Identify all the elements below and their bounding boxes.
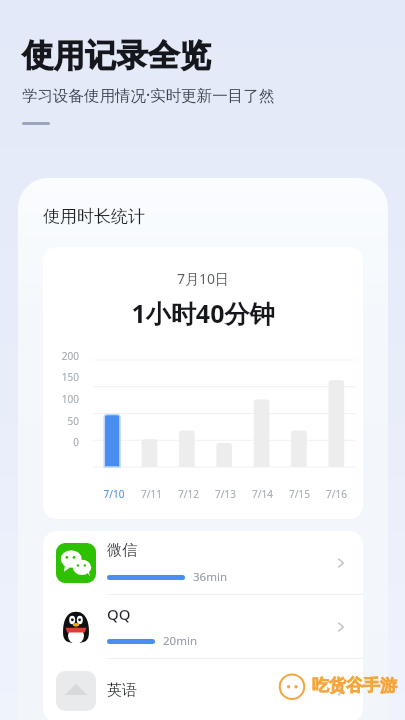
- other: 查看详情: [332, 682, 350, 700]
- staticText: 7/12: [170, 487, 207, 501]
- staticText: 200: [43, 349, 79, 363]
- staticText: 50: [43, 414, 79, 428]
- staticText: 36min: [193, 569, 227, 585]
- staticText: 100: [43, 392, 79, 406]
- staticText: 7/11: [133, 487, 170, 501]
- button[interactable]: 微信: [43, 531, 363, 594]
- staticText: 7/16: [318, 487, 355, 501]
- staticText: 7月10日: [43, 269, 363, 288]
- staticText: 学习设备使用情况·实时更新一目了然: [22, 84, 275, 105]
- staticText: 使用时长统计: [43, 206, 145, 227]
- other: 查看详情: [332, 618, 350, 636]
- staticText: 使用记录全览: [22, 36, 211, 75]
- staticText: 7/10: [95, 487, 133, 501]
- staticText: 微信: [107, 541, 137, 560]
- button[interactable]: 英语: [43, 659, 363, 720]
- staticText: 1小时40分钟: [43, 296, 363, 330]
- staticText: 英语: [107, 681, 137, 700]
- staticText: 150: [43, 370, 79, 384]
- staticText: 7/15: [281, 487, 318, 501]
- staticText: 吃货谷手游: [312, 675, 397, 696]
- button[interactable]: QQ: [43, 595, 363, 658]
- staticText: 0: [43, 435, 79, 449]
- other: 查看详情: [332, 554, 350, 572]
- staticText: 7/14: [244, 487, 281, 501]
- staticText: 20min: [163, 633, 197, 649]
- staticText: QQ: [107, 604, 131, 624]
- staticText: 7/13: [207, 487, 244, 501]
